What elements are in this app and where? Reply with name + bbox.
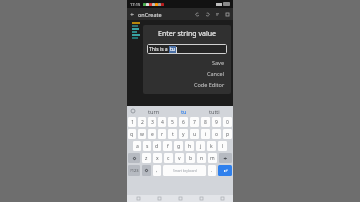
- button[interactable]: 0: [223, 117, 232, 127]
- button[interactable]: c: [164, 153, 173, 163]
- staticText: 7: [193, 119, 196, 126]
- button[interactable]: g: [174, 141, 183, 151]
- staticText: g: [177, 143, 181, 150]
- staticText: a: [136, 143, 139, 150]
- button[interactable]: p: [223, 129, 232, 139]
- staticText: d: [155, 143, 159, 150]
- button[interactable]: 4: [158, 117, 166, 127]
- button[interactable]: m: [208, 153, 217, 163]
- button[interactable]: Voice input: [127, 106, 139, 116]
- button[interactable]: o: [212, 129, 221, 139]
- staticText: c: [167, 155, 170, 162]
- staticText: y: [182, 131, 185, 138]
- staticText: 6: [182, 119, 185, 126]
- button[interactable]: 7: [190, 117, 199, 127]
- button[interactable]: Backspace: [219, 153, 232, 163]
- button[interactable]: Keyboard switch: [127, 195, 149, 202]
- staticText: m: [210, 155, 215, 162]
- button[interactable]: v: [175, 153, 184, 163]
- staticText: 17:15: [130, 2, 141, 7]
- button[interactable]: Cancel: [147, 70, 227, 77]
- button[interactable]: Undo: [192, 8, 202, 20]
- button[interactable]: n: [197, 153, 206, 163]
- staticText: b: [189, 155, 193, 162]
- staticText: j: [200, 143, 202, 150]
- staticText: 3: [151, 119, 154, 126]
- button[interactable]: Shift: [128, 153, 140, 163]
- button[interactable]: Redo: [202, 8, 212, 20]
- button[interactable]: z: [142, 153, 151, 163]
- button[interactable]: r: [158, 129, 166, 139]
- button[interactable]: Emoji: [142, 165, 151, 176]
- staticText: p: [226, 131, 230, 138]
- button[interactable]: 2: [138, 117, 146, 127]
- button[interactable]: l: [218, 141, 227, 151]
- button[interactable]: tutti: [199, 106, 229, 116]
- staticText: onCreate: [138, 11, 162, 18]
- button[interactable]: ,: [153, 165, 161, 176]
- staticText: u: [193, 131, 197, 138]
- button[interactable]: Space: [163, 165, 206, 176]
- staticText: tu: [181, 108, 187, 115]
- staticText: v: [178, 155, 181, 162]
- button[interactable]: Enter: [218, 165, 232, 176]
- button[interactable]: turn: [139, 106, 169, 116]
- button[interactable]: ?123: [128, 165, 140, 176]
- staticText: n: [200, 155, 204, 162]
- staticText: This is a: [149, 46, 169, 53]
- staticText: Enter string value: [147, 29, 227, 39]
- staticText: .: [211, 167, 213, 174]
- button[interactable]: y: [179, 129, 188, 139]
- button[interactable]: 8: [201, 117, 210, 127]
- staticText: ,: [156, 167, 158, 174]
- button[interactable]: Back: [127, 9, 138, 20]
- staticText: i: [205, 131, 207, 138]
- button[interactable]: i: [201, 129, 210, 139]
- button[interactable]: x: [153, 153, 162, 163]
- button[interactable]: d: [153, 141, 161, 151]
- button[interactable]: Back: [191, 195, 212, 202]
- staticText: q: [130, 131, 134, 138]
- button[interactable]: Recents: [149, 195, 170, 202]
- button[interactable]: s: [143, 141, 151, 151]
- staticText: 4: [161, 119, 164, 126]
- button[interactable]: b: [186, 153, 195, 163]
- staticText: Cancel: [207, 70, 225, 77]
- button[interactable]: Code Editor: [147, 81, 227, 88]
- staticText: 2: [141, 119, 144, 126]
- staticText: Code Editor: [194, 81, 225, 88]
- button[interactable]: .: [208, 165, 216, 176]
- button[interactable]: t: [168, 129, 177, 139]
- button[interactable]: This is a: [147, 44, 227, 54]
- staticText: o: [215, 131, 219, 138]
- button[interactable]: Home: [170, 195, 191, 202]
- button[interactable]: h: [185, 141, 194, 151]
- button[interactable]: More options: [222, 8, 232, 20]
- button[interactable]: f: [163, 141, 172, 151]
- button[interactable]: Run: [212, 8, 222, 20]
- button[interactable]: e: [148, 129, 156, 139]
- staticText: f: [167, 143, 169, 150]
- button[interactable]: k: [207, 141, 216, 151]
- staticText: k: [210, 143, 213, 150]
- button[interactable]: a: [133, 141, 141, 151]
- button[interactable]: w: [138, 129, 146, 139]
- staticText: 1: [131, 119, 134, 126]
- staticText: ?123: [130, 168, 139, 173]
- button[interactable]: tu: [169, 106, 199, 116]
- button[interactable]: u: [190, 129, 199, 139]
- button[interactable]: q: [128, 129, 136, 139]
- button[interactable]: 3: [148, 117, 156, 127]
- button[interactable]: 6: [179, 117, 188, 127]
- staticText: l: [222, 143, 224, 150]
- staticText: t: [172, 131, 174, 138]
- staticText: w: [140, 131, 144, 138]
- button[interactable]: 9: [212, 117, 221, 127]
- button[interactable]: 5: [168, 117, 177, 127]
- staticText: r: [161, 131, 164, 138]
- button[interactable]: j: [196, 141, 205, 151]
- staticText: turn: [148, 108, 160, 115]
- button[interactable]: 1: [128, 117, 136, 127]
- button[interactable]: Save: [147, 59, 227, 66]
- button[interactable]: Hide keyboard: [212, 195, 233, 202]
